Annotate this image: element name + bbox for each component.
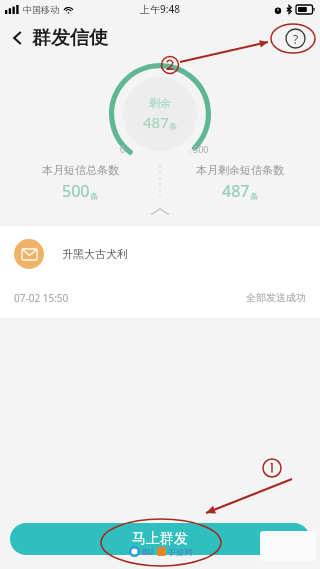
staticText: 0 bbox=[120, 143, 126, 155]
staticText: 升黑大古犬利 bbox=[62, 247, 128, 261]
staticText: 手游网 bbox=[168, 547, 192, 557]
staticText: 本月剩余短信条数 bbox=[196, 163, 284, 177]
staticText: 全部发送成功 bbox=[246, 291, 306, 304]
staticText: 马上群发 bbox=[132, 530, 188, 548]
staticText: 中国移动 bbox=[23, 4, 59, 15]
staticText: 500 bbox=[193, 143, 209, 155]
staticText: 上午9:48 bbox=[140, 2, 180, 16]
staticText: 条 bbox=[250, 191, 258, 201]
staticText: 487 bbox=[222, 180, 250, 202]
staticText: 487 bbox=[143, 112, 169, 132]
staticText: 本月短信总条数 bbox=[42, 163, 119, 177]
button[interactable]: Collapse bbox=[131, 205, 189, 218]
button[interactable]: Help bbox=[285, 28, 306, 49]
staticText: 群发信使 bbox=[32, 26, 108, 50]
staticText: 条 bbox=[169, 121, 177, 131]
staticText: 500 bbox=[62, 180, 90, 202]
staticText: 条 bbox=[90, 191, 98, 201]
staticText: ? bbox=[293, 31, 299, 47]
button[interactable]: 升黑大古犬利 bbox=[0, 226, 320, 318]
button[interactable]: 群发信使 bbox=[0, 22, 116, 54]
staticText: BU bbox=[142, 546, 154, 557]
staticText: 07-02 15:50 bbox=[14, 291, 69, 305]
button[interactable]: 马上群发 bbox=[10, 523, 310, 555]
staticText: 剩余 bbox=[149, 96, 171, 110]
